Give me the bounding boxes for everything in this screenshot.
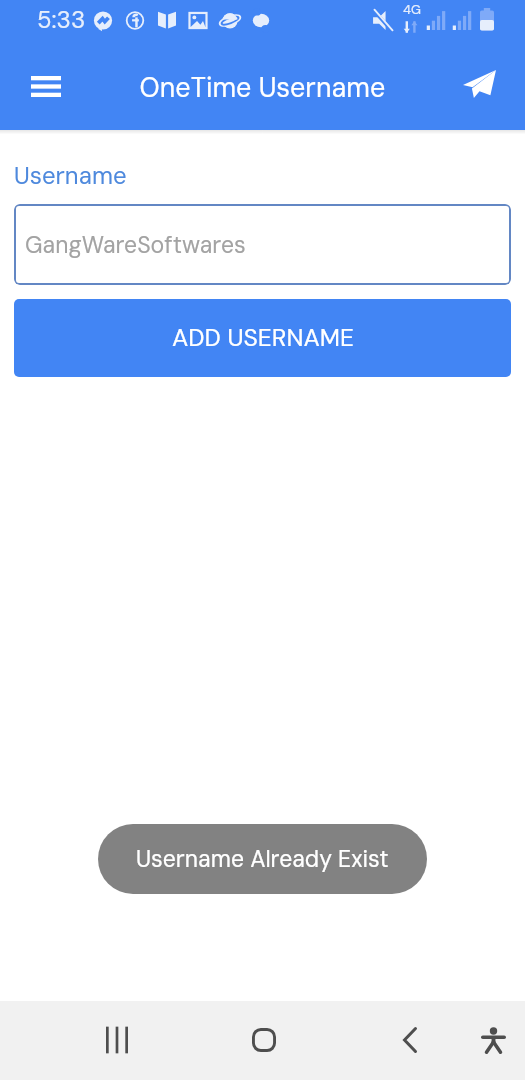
button[interactable]: Home	[241, 1017, 287, 1063]
button[interactable]: Back	[387, 1017, 433, 1063]
button[interactable]: ADD USERNAME	[14, 299, 511, 377]
staticText: 4G	[403, 1, 421, 18]
button[interactable]: Send	[455, 60, 503, 108]
button[interactable]: Open navigation menu	[22, 62, 70, 110]
staticText: Username Already Exist	[136, 844, 389, 874]
staticText: 5:33	[37, 4, 86, 35]
staticText: Username	[14, 160, 127, 191]
staticText: ADD USERNAME	[172, 322, 354, 354]
staticText: GangWareSoftwares	[25, 230, 246, 260]
button[interactable]: Recents	[94, 1017, 140, 1063]
button[interactable]: Accessibility	[470, 1017, 516, 1063]
button[interactable]: GangWareSoftwares	[14, 204, 511, 285]
staticText: OneTime Username	[0, 70, 525, 105]
